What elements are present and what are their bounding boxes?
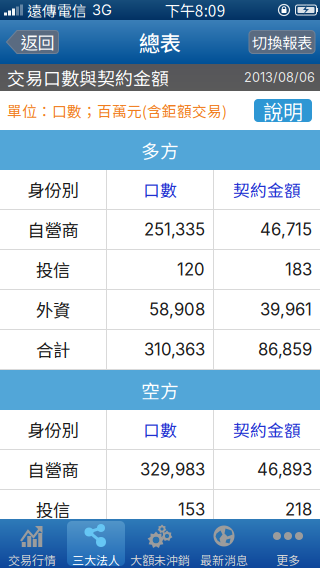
staticText: 46,893	[257, 459, 312, 480]
button[interactable]: 更多	[256, 519, 320, 568]
staticText: 3G	[92, 1, 112, 19]
staticText: 身份別	[27, 417, 78, 442]
staticText: 合計	[36, 337, 70, 362]
staticText: 切換報表	[252, 31, 312, 53]
staticText: 大額未沖銷	[130, 551, 190, 568]
button[interactable]: 大額未沖銷	[128, 519, 192, 568]
staticText: 39,961	[260, 299, 312, 320]
button[interactable]: 交易行情	[0, 519, 64, 568]
staticText: 交易口數與契約金額	[7, 64, 169, 91]
staticText: 交易行情	[8, 551, 56, 568]
staticText: 口數	[143, 177, 177, 201]
button[interactable]: 說明	[254, 99, 312, 122]
button[interactable]: 最新消息	[192, 519, 256, 568]
staticText: 329,983	[140, 459, 205, 480]
staticText: 153	[178, 499, 205, 520]
button[interactable]: 切換報表	[249, 30, 315, 53]
staticText: 86,859	[258, 339, 312, 360]
staticText: 投信	[36, 257, 70, 282]
staticText: 更多	[276, 551, 300, 568]
staticText: 自營商	[27, 217, 78, 242]
staticText: 外資	[36, 297, 70, 322]
staticText: 下午8:09	[165, 0, 226, 21]
staticText: 58,908	[149, 299, 205, 320]
button[interactable]: 返回	[6, 30, 59, 54]
staticText: 空方	[141, 376, 179, 403]
staticText: 口數	[143, 417, 177, 441]
staticText: 身份別	[27, 177, 78, 202]
staticText: 310,363	[144, 339, 205, 360]
staticText: 218	[285, 499, 312, 520]
staticText: 自營商	[27, 457, 78, 482]
staticText: 契約金額	[233, 417, 301, 441]
staticText: 2013/08/06	[244, 70, 315, 85]
staticText: 多方	[141, 136, 179, 163]
staticText: 投信	[36, 497, 70, 522]
staticText: 251,335	[144, 219, 205, 240]
staticText: 契約金額	[233, 177, 301, 201]
staticText: 183	[285, 259, 312, 280]
staticText: 返回	[20, 29, 54, 55]
staticText: 遠傳電信	[27, 0, 87, 21]
button[interactable]: 三大法人	[64, 519, 128, 568]
staticText: 單位：口數；百萬元(含鉅額交易)	[7, 100, 227, 121]
staticText: 三大法人	[72, 551, 120, 568]
staticText: 46,715	[260, 219, 312, 240]
staticText: 總表	[139, 27, 181, 57]
staticText: 說明	[263, 96, 303, 125]
staticText: 最新消息	[200, 551, 248, 568]
staticText: 120	[177, 259, 205, 280]
